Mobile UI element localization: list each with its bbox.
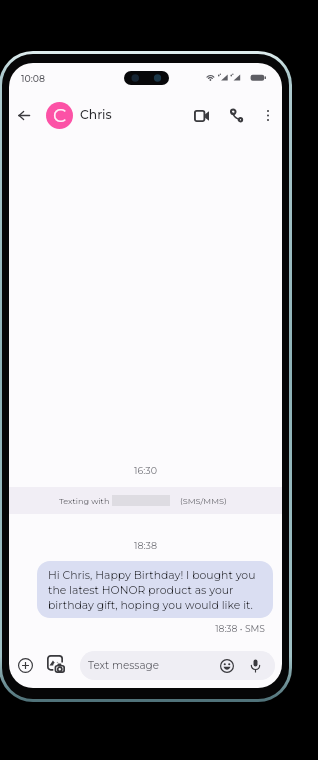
button[interactable]: Video call xyxy=(191,104,212,127)
staticText: 16:30 xyxy=(9,465,282,477)
staticText: Chris xyxy=(80,107,112,122)
button[interactable]: Back xyxy=(14,104,34,127)
button[interactable]: Add attachment xyxy=(15,655,35,675)
staticText: 10:08 xyxy=(21,73,45,84)
button[interactable]: Text message xyxy=(80,651,275,680)
staticText: C xyxy=(53,104,67,127)
button[interactable]: More options xyxy=(259,104,277,127)
staticText: 18:38 • SMS xyxy=(9,623,265,634)
staticText: Hi Chris, Happy Birthday! I bought you t… xyxy=(48,568,263,612)
staticText: Text message xyxy=(88,659,159,672)
staticText: 18:38 xyxy=(9,540,282,552)
button[interactable]: Call xyxy=(226,104,247,127)
button[interactable]: Hi Chris, Happy Birthday! I bought you t… xyxy=(37,561,273,618)
staticText: (SMS/MMS) xyxy=(180,496,227,506)
button[interactable]: Gallery xyxy=(45,652,67,676)
staticText: Texting with xyxy=(59,496,110,506)
